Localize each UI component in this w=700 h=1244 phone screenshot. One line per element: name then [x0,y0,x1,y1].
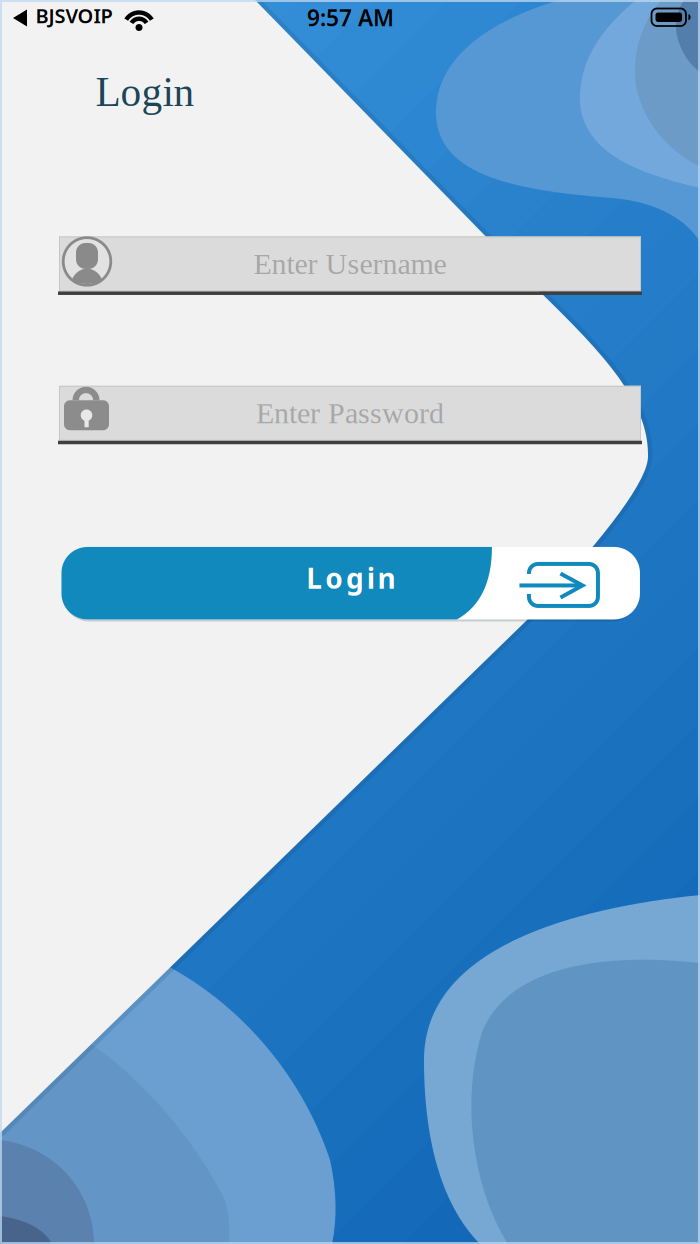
staticText: Login [306,559,396,597]
staticText: BJSVOIP [35,2,112,29]
button[interactable]: Login [61,547,640,619]
staticText: Login [95,69,194,115]
staticText: Enter Password [256,397,444,430]
button[interactable]: Enter Username [59,236,641,295]
button[interactable]: Back to BJSVOIP [12,8,130,28]
button[interactable]: Enter Password [59,386,641,444]
staticText: Enter Username [253,247,446,280]
staticText: 9:57 AM [307,2,394,32]
